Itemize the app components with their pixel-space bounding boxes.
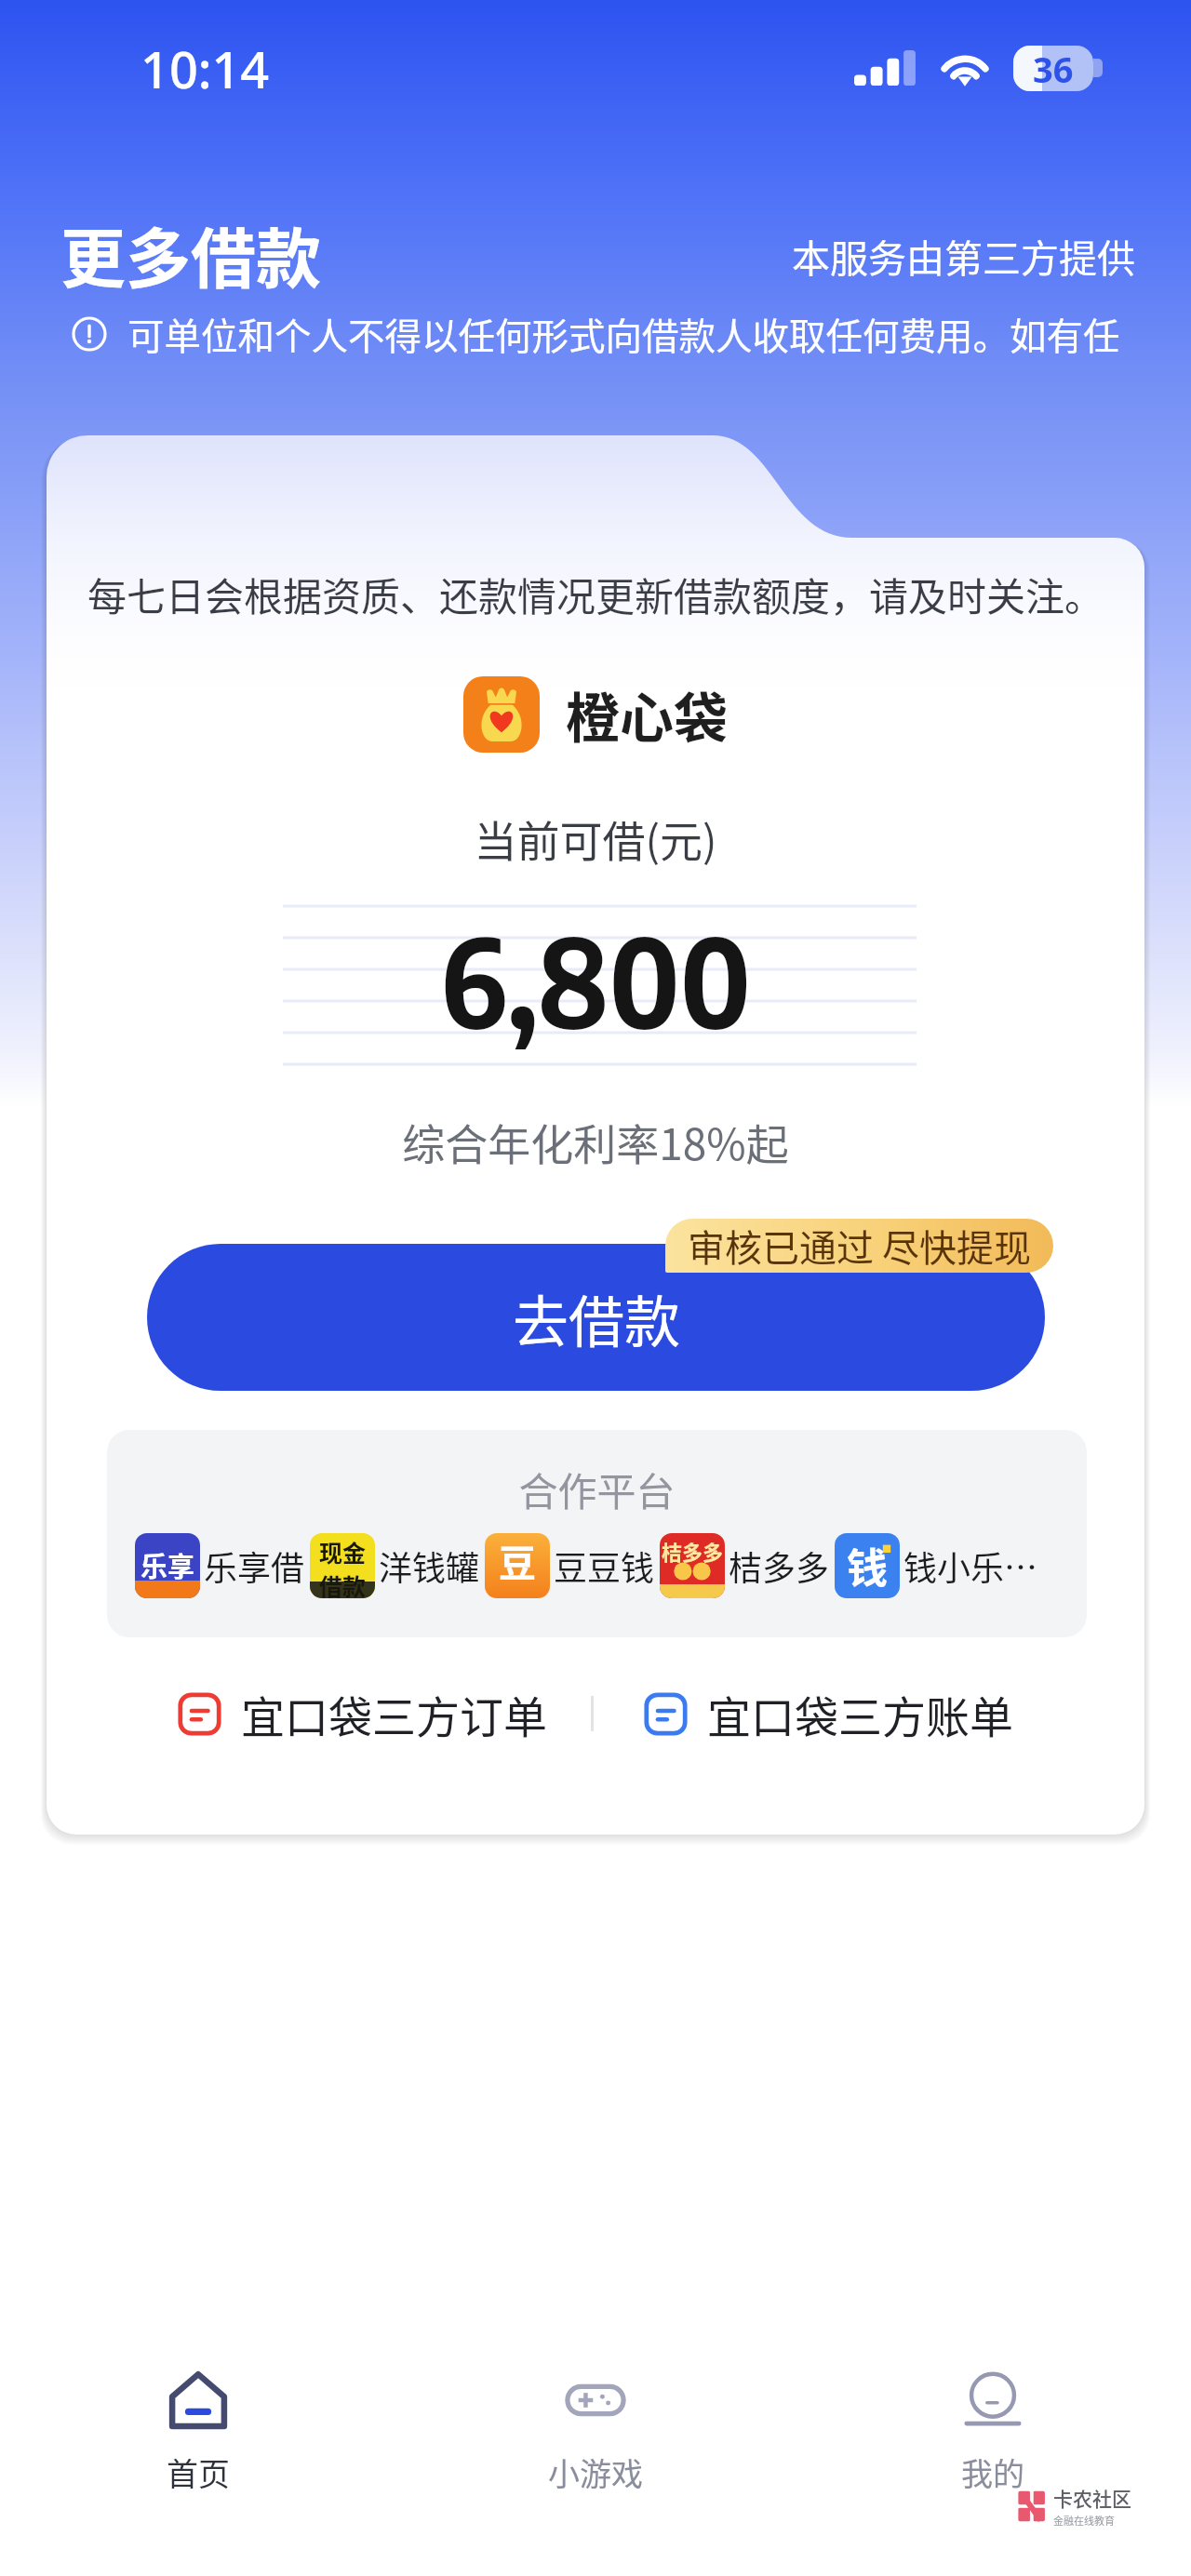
button[interactable]: 本服务由第三方提供 (792, 228, 1135, 283)
staticText: 更多借款 (60, 207, 321, 301)
staticText: 宜口袋三方订单 (241, 1682, 547, 1745)
staticText: 钱 (847, 1536, 888, 1595)
button[interactable]: 我的 (794, 2343, 1191, 2523)
staticText: 金融在线教育 (1053, 2513, 1115, 2528)
staticText: 豆 (499, 1534, 536, 1588)
staticText: 卡农社区 (1053, 2484, 1131, 2512)
staticText: 综合年化利率18%起 (47, 1111, 1144, 1173)
staticText: 桔多多 (662, 1536, 724, 1566)
staticText: 现金 (319, 1535, 367, 1568)
staticText: 10:14 (141, 34, 270, 103)
button[interactable]: 去借款 (147, 1244, 1045, 1391)
staticText: 桔多多 (729, 1542, 830, 1590)
button[interactable]: 首页 (0, 2343, 396, 2523)
staticText: 宜口袋三方账单 (707, 1682, 1013, 1745)
staticText: 审核已通过 尽快提现 (688, 1219, 1031, 1273)
staticText: 乐享借 (204, 1542, 305, 1590)
staticText: 小游戏 (548, 2449, 643, 2495)
staticText: 豆豆钱 (554, 1542, 655, 1590)
staticText: 可单位和个人不得以任何形式向借款人收取任何费用。如有任 (127, 307, 1120, 360)
staticText: 36 (1033, 46, 1074, 90)
staticText: 钱小乐… (903, 1542, 1038, 1590)
staticText: 橙心袋 (566, 675, 729, 754)
staticText: 去借款 (513, 1277, 680, 1358)
button[interactable]: 合作平台 (107, 1430, 1087, 1637)
staticText: 每七日会根据资质、还款情况更新借款额度，请及时关注。 (47, 566, 1144, 622)
staticText: 合作平台 (107, 1461, 1087, 1517)
staticText: 我的 (961, 2449, 1024, 2495)
button[interactable]: 宜口袋三方账单 (645, 1682, 1013, 1745)
button[interactable]: 小游戏 (396, 2343, 794, 2523)
staticText: 首页 (167, 2449, 230, 2495)
staticText: 洋钱罐 (379, 1542, 480, 1590)
staticText: 6,800 (47, 903, 1144, 1056)
staticText: 当前可借(元) (47, 808, 1144, 870)
staticText: 乐享 (141, 1545, 195, 1584)
staticText: 借款 (319, 1568, 367, 1598)
button[interactable]: 宜口袋三方订单 (179, 1682, 547, 1745)
